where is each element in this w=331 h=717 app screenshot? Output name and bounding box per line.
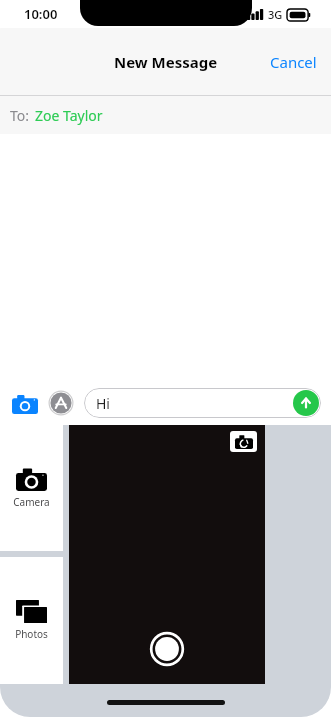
staticText: Hi (96, 394, 110, 413)
button[interactable]: Photos (0, 557, 63, 684)
button[interactable]: To: (0, 96, 331, 134)
button[interactable]: Hi (84, 388, 321, 418)
button[interactable]: Flip camera (230, 431, 257, 452)
staticText: New Message (114, 52, 218, 72)
staticText: 10:00 (24, 5, 58, 23)
staticText: Camera (13, 495, 50, 509)
button[interactable]: App Store (46, 388, 76, 418)
button[interactable]: Flip camera (69, 425, 265, 684)
staticText: Photos (15, 627, 48, 641)
button[interactable]: Camera (0, 425, 63, 551)
staticText: 3G (268, 7, 283, 22)
button[interactable]: Camera (10, 388, 40, 418)
button[interactable]: Cancel (256, 42, 331, 82)
button[interactable]: Send (293, 390, 319, 416)
button[interactable]: Take photo (150, 632, 184, 666)
staticText: Zoe Taylor (35, 106, 103, 125)
staticText: To: (10, 106, 30, 125)
staticText: Cancel (270, 52, 317, 72)
